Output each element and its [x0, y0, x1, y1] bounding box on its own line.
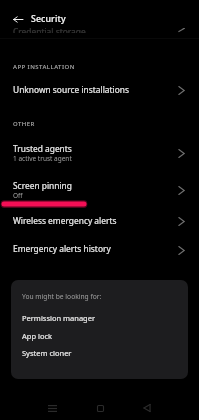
button[interactable]: Unknown source installations [0, 81, 199, 108]
button[interactable]: Screen pinning [0, 177, 199, 211]
staticText: App lock [22, 331, 53, 341]
button[interactable]: Back [138, 399, 156, 417]
staticText: APP INSTALLATION [13, 63, 75, 71]
staticText: 1 active trust agent [13, 154, 72, 163]
staticText: Security [31, 13, 66, 25]
staticText: Wireless emergency alerts [13, 215, 117, 226]
staticText: You might be looking for: [22, 292, 102, 301]
staticText: Off [13, 191, 23, 200]
staticText: OTHER [13, 120, 35, 128]
staticText: Credential storage [13, 28, 86, 33]
staticText: Screen pinning [13, 180, 72, 191]
button[interactable]: Home [91, 399, 109, 417]
button[interactable]: Permission manager [11, 309, 188, 327]
button[interactable]: Wireless emergency alerts [0, 212, 199, 239]
staticText: Trusted agents [13, 143, 72, 154]
button[interactable]: System cloner [11, 344, 188, 362]
button[interactable]: Emergency alerts history [0, 240, 199, 267]
button[interactable]: App lock [11, 327, 188, 345]
button[interactable]: Back [8, 9, 28, 29]
staticText: Permission manager [22, 313, 96, 323]
button[interactable]: Recents [43, 399, 61, 417]
staticText: Unknown source installations [13, 84, 129, 95]
button[interactable]: Trusted agents [0, 140, 199, 174]
staticText: Emergency alerts history [13, 243, 111, 254]
staticText: System cloner [22, 348, 72, 358]
